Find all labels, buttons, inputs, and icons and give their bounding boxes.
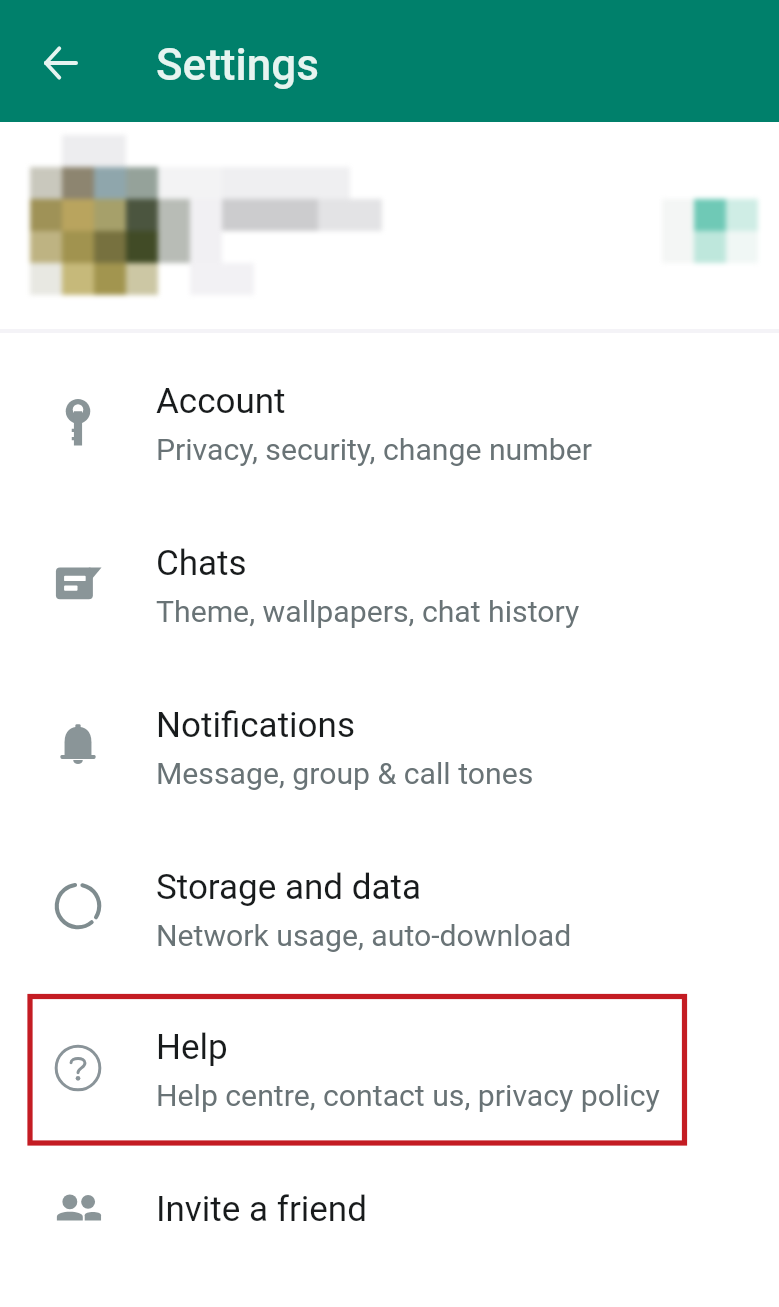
- staticText: Help centre, contact us, privacy policy: [156, 1078, 660, 1113]
- button[interactable]: [0, 122, 779, 327]
- button[interactable]: Invite a friend: [0, 1139, 779, 1301]
- staticText: Network usage, auto-download: [156, 918, 572, 953]
- button[interactable]: Help: [0, 977, 779, 1139]
- staticText: Help: [156, 1027, 228, 1068]
- staticText: Settings: [156, 39, 319, 91]
- button[interactable]: Chats: [0, 493, 779, 655]
- staticText: Theme, wallpapers, chat history: [156, 594, 580, 629]
- staticText: Notifications: [156, 705, 355, 746]
- staticText: Account: [156, 381, 286, 422]
- button[interactable]: Account: [0, 331, 779, 493]
- staticText: Invite a friend: [156, 1189, 367, 1230]
- staticText: Message, group & call tones: [156, 756, 534, 791]
- staticText: Privacy, security, change number: [156, 432, 592, 467]
- staticText: Chats: [156, 543, 247, 584]
- staticText: Storage and data: [156, 867, 422, 908]
- button[interactable]: Storage and data: [0, 817, 779, 979]
- button[interactable]: Notifications: [0, 655, 779, 817]
- button[interactable]: Back: [30, 32, 92, 94]
